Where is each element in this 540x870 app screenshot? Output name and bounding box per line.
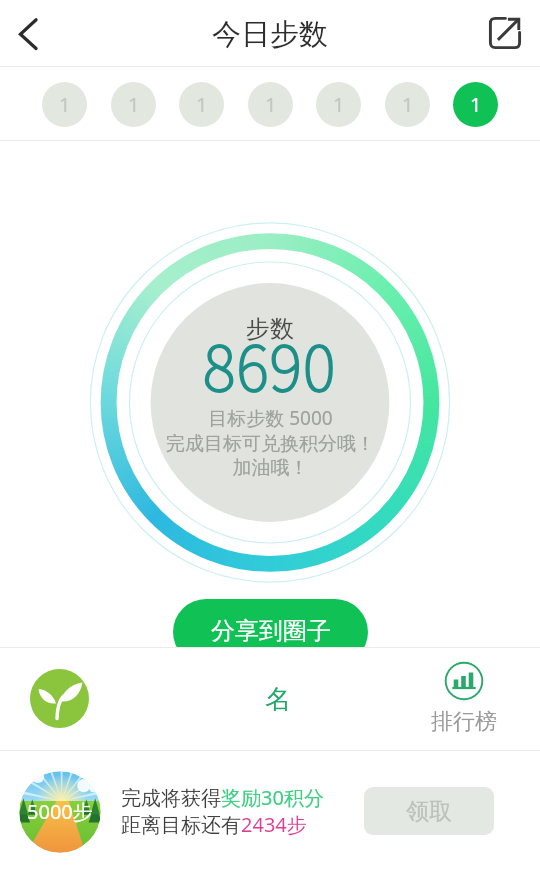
staticText: 步数 [246, 314, 294, 344]
button[interactable]: Ant Forest [30, 669, 89, 728]
button[interactable]: 1 [453, 82, 498, 127]
button[interactable]: 1 [385, 82, 430, 127]
staticText: 排行榜 [431, 708, 497, 736]
button[interactable]: Back [3, 9, 53, 59]
button[interactable]: 排行榜 [424, 661, 504, 736]
staticText: 目标步数 5000 完成目标可兑换积分哦！ 加油哦！ [166, 405, 375, 480]
button[interactable]: 1 [179, 82, 224, 127]
staticText: 1 [402, 91, 414, 118]
staticText: 5000步 [27, 798, 93, 825]
staticText: 8690 [203, 319, 337, 409]
button[interactable]: 领取 [364, 787, 494, 835]
staticText: 分享到圈子 [211, 616, 331, 646]
staticText: 名 [265, 683, 291, 716]
staticText: 今日步数 [212, 16, 328, 53]
staticText: 1 [59, 91, 71, 118]
button[interactable]: 1 [248, 82, 293, 127]
staticText: 1 [470, 91, 482, 118]
staticText: 距离目标还有2434步 [121, 811, 307, 838]
button[interactable]: 1 [316, 82, 361, 127]
button[interactable]: Share [480, 8, 530, 58]
staticText: 1 [196, 91, 208, 118]
staticText: 领取 [406, 797, 452, 826]
button[interactable]: 1 [111, 82, 156, 127]
staticText: 完成将获得奖励30积分 [121, 784, 324, 811]
staticText: 1 [333, 91, 345, 118]
button[interactable]: 1 [42, 82, 87, 127]
staticText: 1 [265, 91, 277, 118]
staticText: 1 [128, 91, 140, 118]
button[interactable]: 分享到圈子 [173, 599, 368, 665]
